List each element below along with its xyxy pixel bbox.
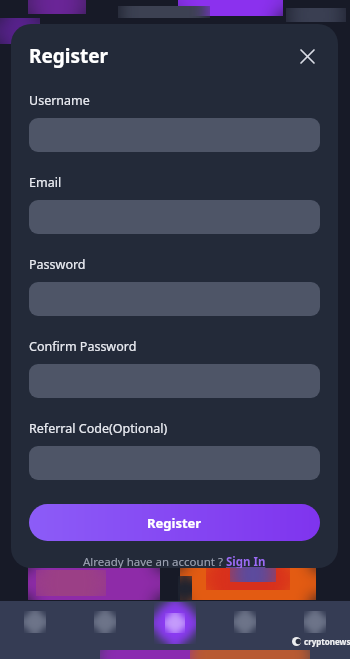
button[interactable] xyxy=(29,446,320,480)
staticText: Referral Code(Optional) xyxy=(29,420,168,437)
button[interactable]: Navigation item xyxy=(234,611,256,633)
button[interactable] xyxy=(29,282,320,316)
staticText: Already have an account ? Sign In xyxy=(83,554,266,568)
button[interactable]: Navigation item xyxy=(24,611,46,633)
button[interactable]: Close xyxy=(294,43,320,69)
button[interactable] xyxy=(29,118,320,152)
staticText: Register xyxy=(147,514,202,532)
staticText: Username xyxy=(29,92,90,109)
button[interactable]: Navigation item xyxy=(94,611,116,633)
staticText: Email xyxy=(29,174,62,191)
staticText: Register xyxy=(29,43,109,69)
staticText: cryptonews xyxy=(304,636,350,647)
button[interactable]: Navigation item xyxy=(304,611,326,633)
staticText: Password xyxy=(29,256,86,273)
button[interactable]: Register xyxy=(29,504,320,541)
button[interactable]: Add xyxy=(154,602,196,644)
button[interactable] xyxy=(29,200,320,234)
staticText: Confirm Password xyxy=(29,338,137,355)
button[interactable]: Already have an account ? Sign In xyxy=(83,554,266,568)
button[interactable] xyxy=(29,364,320,398)
